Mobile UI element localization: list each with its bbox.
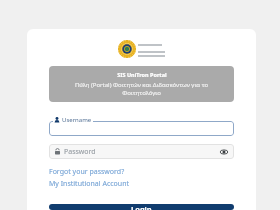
button[interactable]: Password <box>49 144 234 159</box>
staticText: SIS UniTron Portal <box>117 71 167 78</box>
button[interactable]: Forgot your password? <box>49 167 125 177</box>
button[interactable]: My Institutional Account <box>49 179 130 189</box>
button[interactable]: Show password <box>219 147 229 157</box>
staticText: Πύλη (Portal) Φοιτητών και Διδασκόντων γ… <box>55 81 228 97</box>
staticText: Username <box>62 116 92 124</box>
button[interactable]: Username <box>49 116 234 136</box>
staticText: Password <box>64 147 96 157</box>
staticText: Forgot your password? <box>49 167 125 177</box>
staticText: My Institutional Account <box>49 179 130 189</box>
staticText: Login <box>131 204 152 210</box>
button[interactable]: Login <box>49 204 234 210</box>
